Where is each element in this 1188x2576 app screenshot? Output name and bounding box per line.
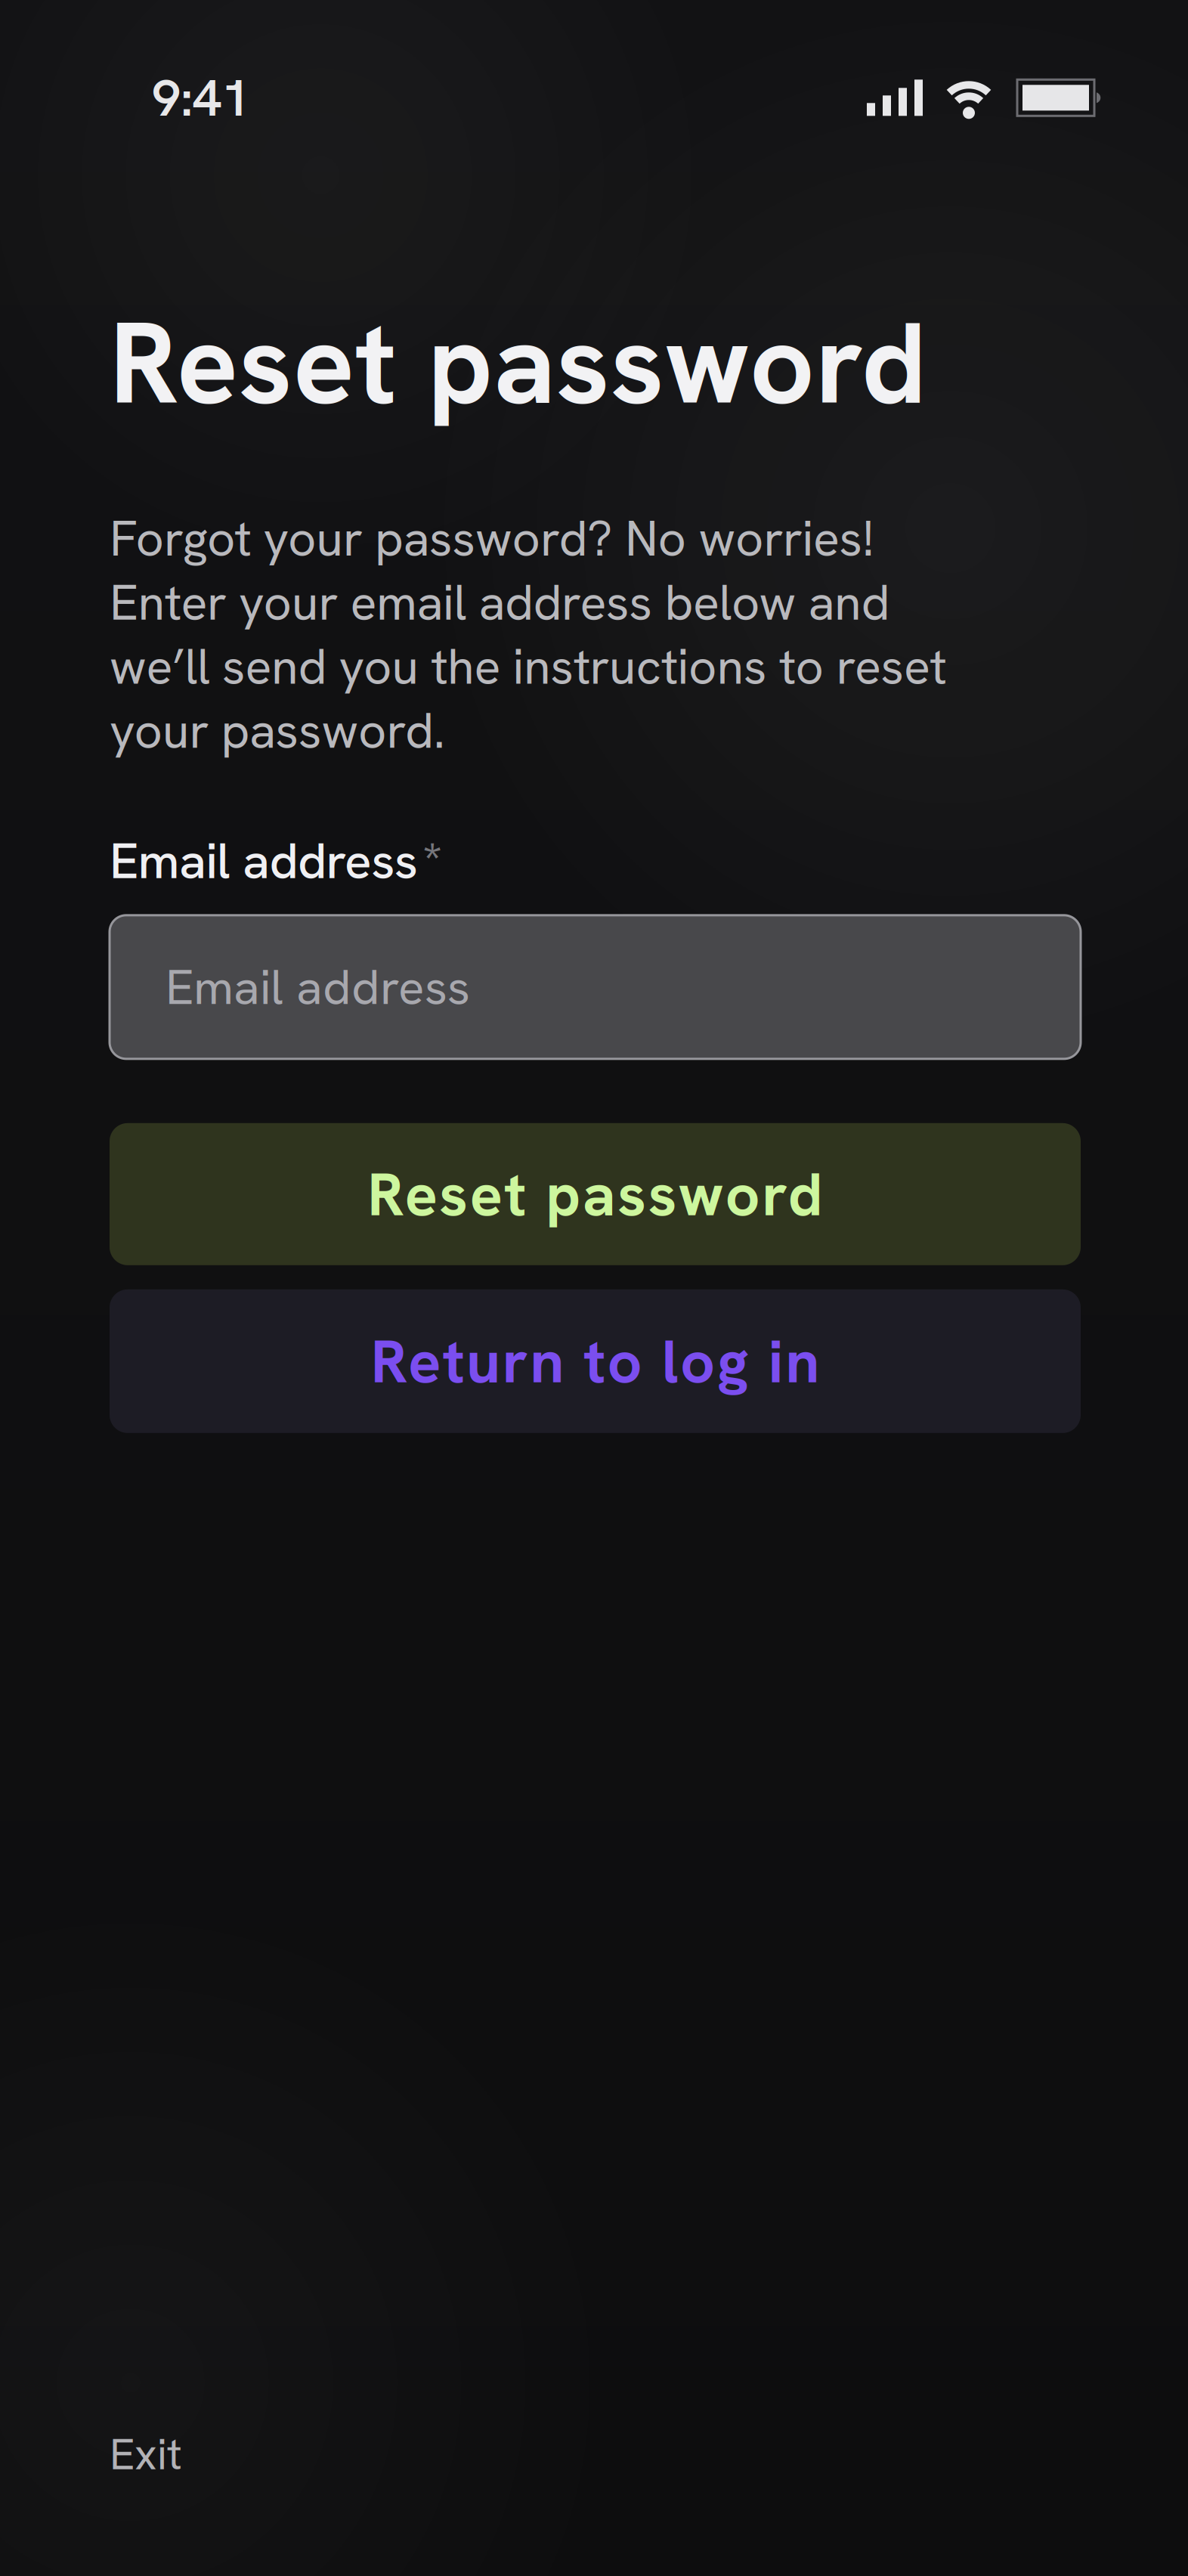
button[interactable]: Exit [110,2426,182,2482]
staticText: Return to log in [371,1322,819,1401]
staticText: 9:41 [152,64,250,131]
staticText: Reset password [110,289,927,437]
staticText: Email address [166,955,470,1019]
staticText: Forgot your password? No worries! Enter … [110,507,947,763]
button[interactable]: Reset password [110,1123,1081,1265]
staticText: Exit [110,2426,182,2482]
button[interactable]: Email address [110,915,1081,1059]
staticText: * [422,828,442,893]
staticText: Reset password [367,1155,823,1234]
button[interactable]: Return to log in [110,1289,1081,1433]
staticText: Email address [110,828,418,893]
